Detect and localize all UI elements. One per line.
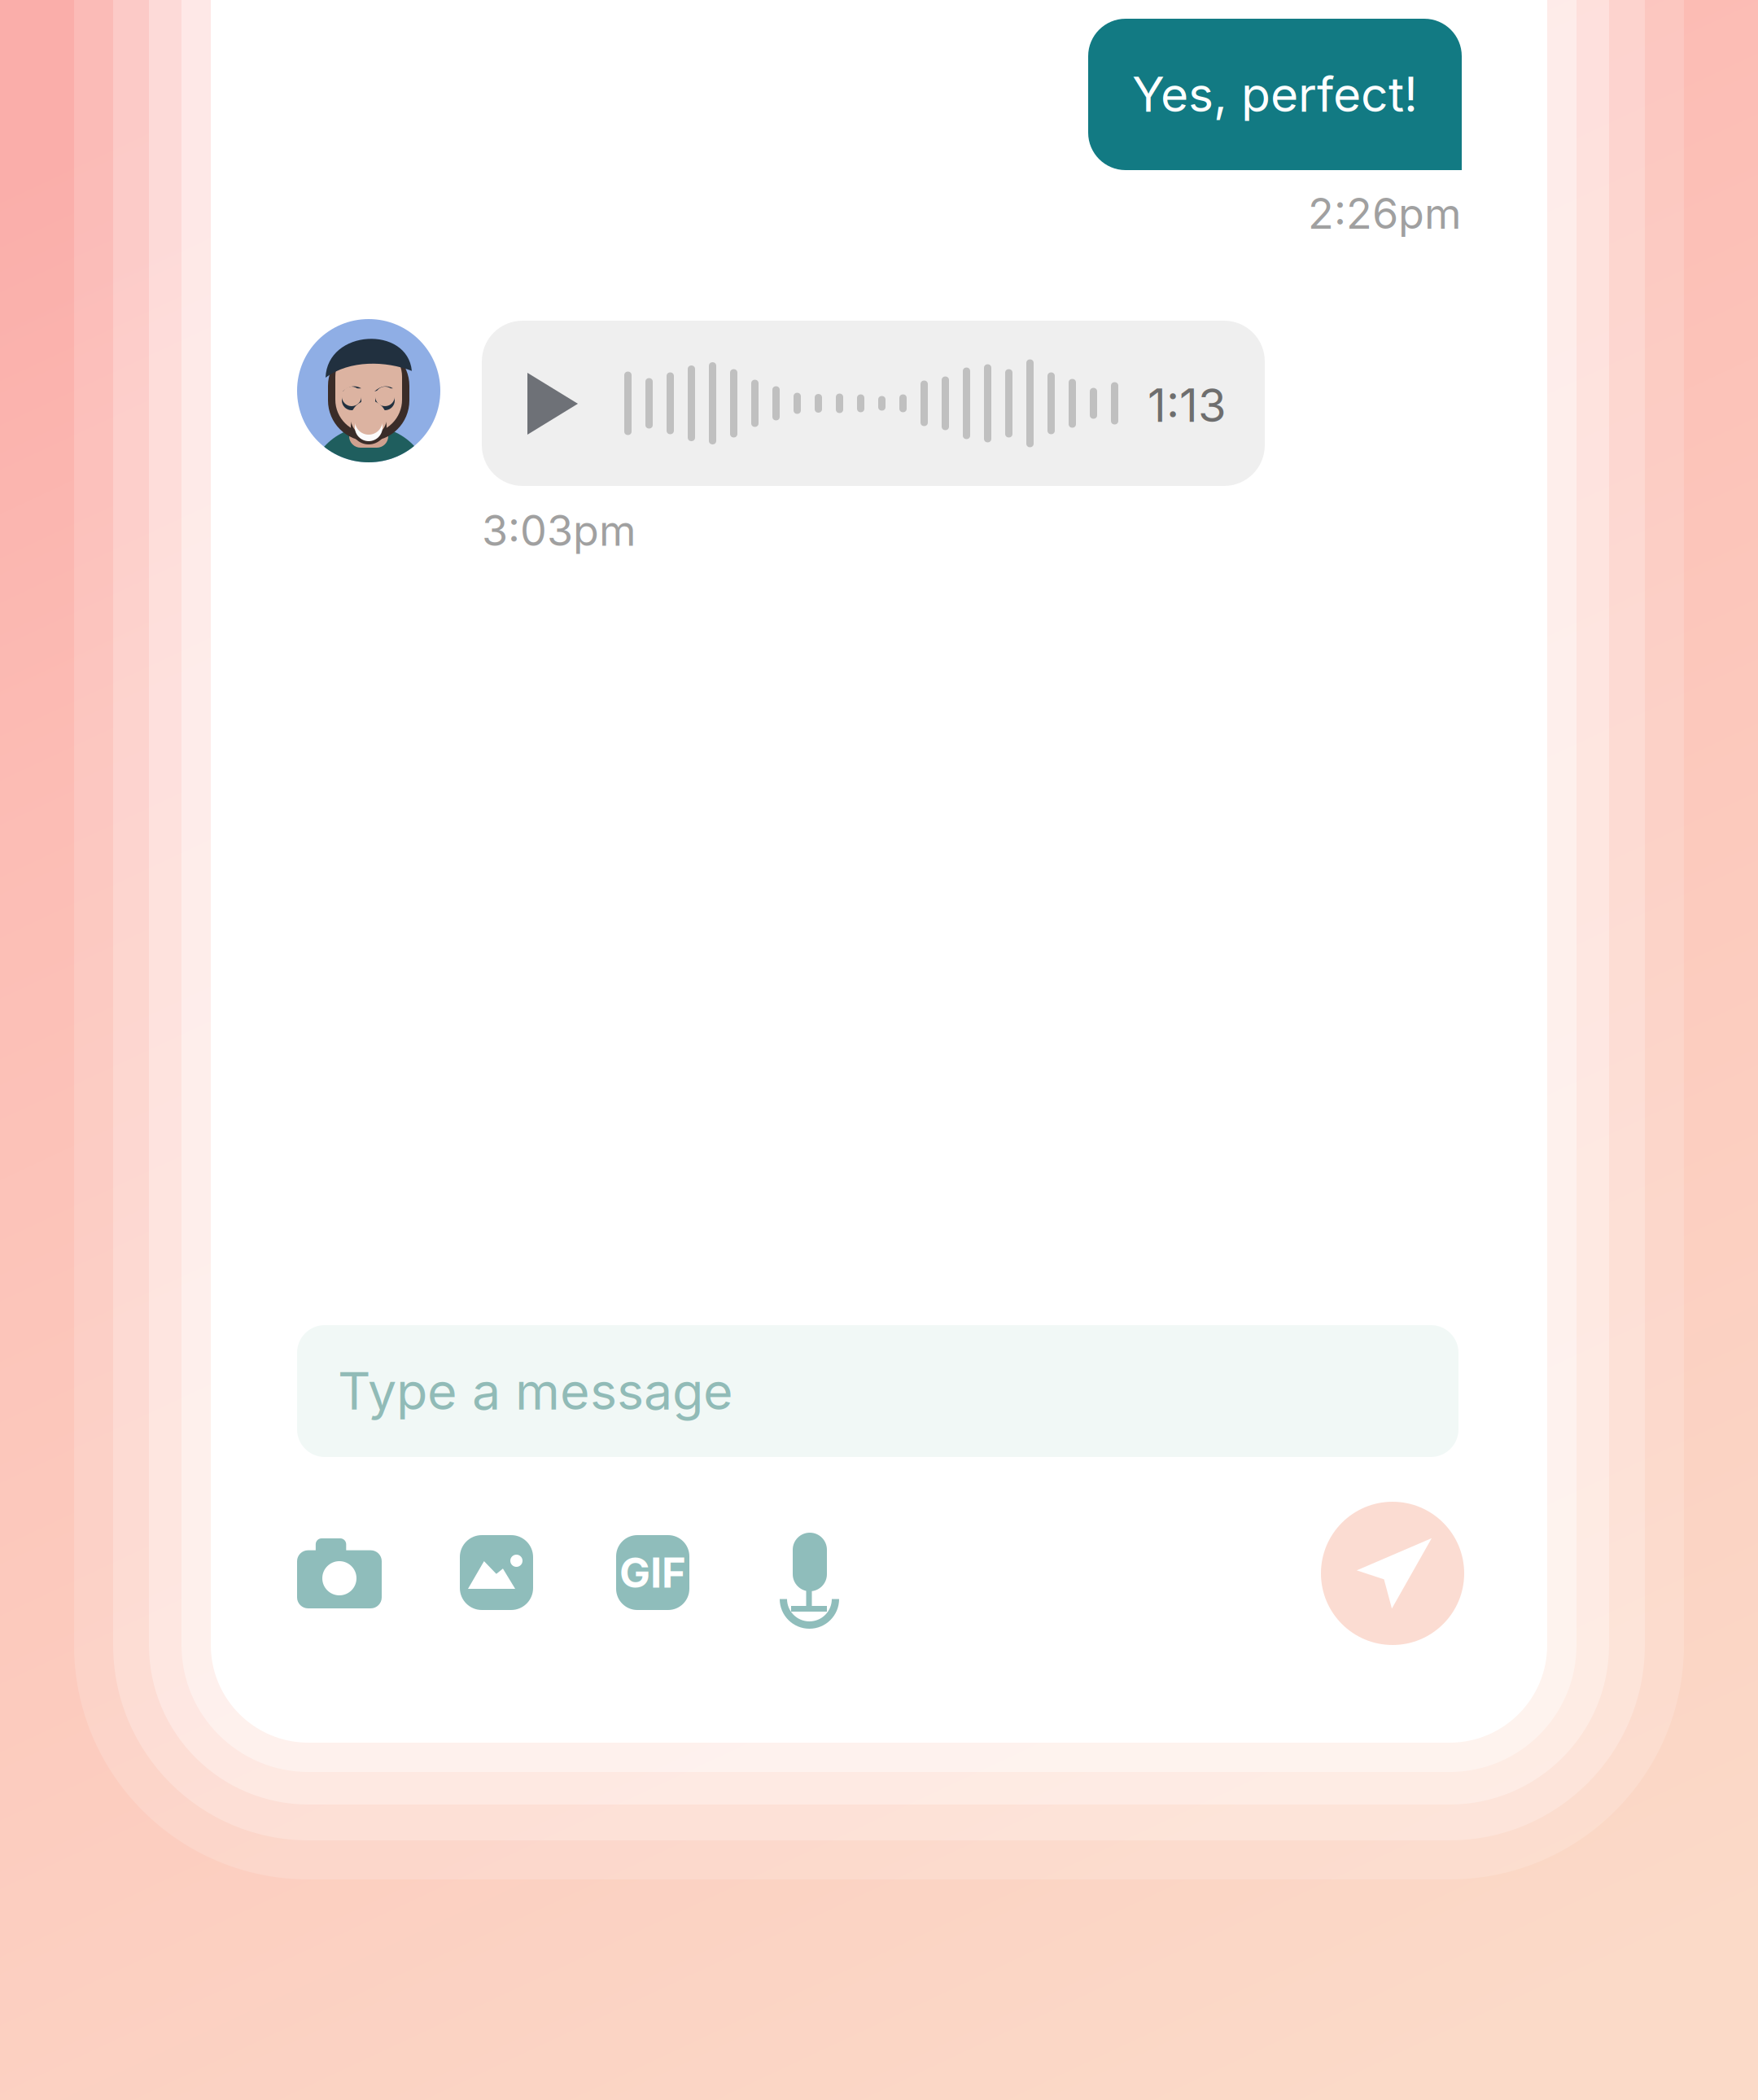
staticText: 1:13	[1148, 378, 1227, 433]
staticText: 3:03pm	[482, 505, 636, 556]
staticText: 2:26pm	[1308, 188, 1462, 239]
button[interactable]: Send	[1321, 1502, 1464, 1645]
button[interactable]: Photos	[460, 1535, 544, 1620]
button[interactable]: Record voice	[780, 1533, 864, 1617]
staticText: Type a message	[338, 1360, 733, 1422]
staticText: Yes, perfect!	[1132, 66, 1418, 123]
button[interactable]: Camera	[297, 1538, 382, 1623]
button[interactable]: GIF	[616, 1535, 701, 1620]
staticText: GIF	[619, 1548, 686, 1597]
